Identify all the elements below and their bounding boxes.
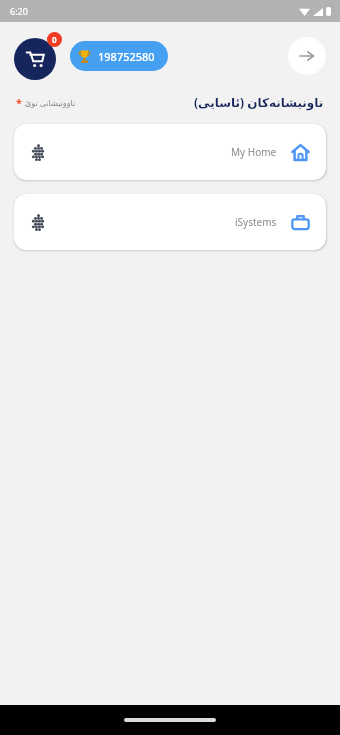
staticText: My Home	[231, 145, 277, 159]
staticText: iSystems	[235, 215, 277, 229]
button[interactable]: Continue	[288, 37, 326, 75]
staticText: 0	[52, 34, 57, 45]
staticText: *	[16, 95, 22, 110]
staticText: ناوونیشانی نوێ	[25, 97, 76, 108]
staticText: ناونیشانەکان (ئاسایی)	[194, 94, 324, 110]
staticText: 6:20	[10, 5, 28, 17]
button[interactable]: Shopping cart	[14, 32, 62, 80]
button[interactable]: iSystems	[14, 194, 326, 250]
button[interactable]: My Home	[14, 124, 326, 180]
staticText: 198752580	[98, 49, 155, 64]
button[interactable]: 198752580	[70, 41, 168, 71]
